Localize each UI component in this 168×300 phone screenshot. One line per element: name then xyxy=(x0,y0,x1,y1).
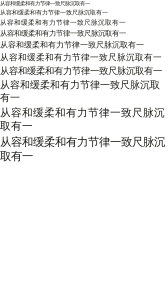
staticText: 从容和缓柔和有力节律一致尺脉沉取有一 xyxy=(0,65,162,77)
staticText: 从容和缓柔和有力节律一致尺脉沉取有一 xyxy=(0,9,108,16)
staticText: 从容和缓柔和有力节律一致尺脉沉取有一 xyxy=(0,18,126,27)
staticText: 从容和缓柔和有力节律一致尺脉沉取有一 xyxy=(0,106,165,133)
staticText: 从容和缓柔和有力节律一致尺脉沉取有一 xyxy=(0,0,90,7)
staticText: 从容和缓柔和有力节律一致尺脉沉取有一 xyxy=(0,29,126,38)
staticText: 从容和缓柔和有力节律一致尺脉沉取有一 xyxy=(0,79,160,104)
staticText: 从容和缓柔和有力节律一致尺脉沉取有一 xyxy=(0,40,144,50)
staticText: 从容和缓柔和有力节律一致尺脉沉取有一 xyxy=(0,135,165,163)
staticText: 从容和缓柔和有力节律一致尺脉沉取有一 xyxy=(0,52,162,63)
